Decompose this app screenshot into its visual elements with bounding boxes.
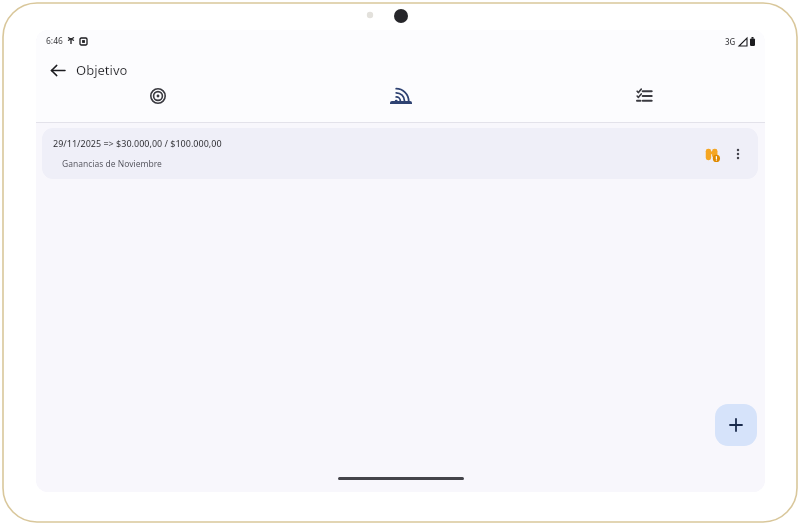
button[interactable]: Agregar — [715, 404, 757, 446]
button[interactable]: 29/11/2025 => $30.000,00 / $100.000,00 — [42, 128, 758, 179]
button[interactable]: Objetivos — [36, 88, 279, 104]
staticText: Objetivo — [76, 61, 128, 79]
button[interactable]: Tareas — [522, 88, 765, 104]
button[interactable]: Alerta — [700, 142, 724, 166]
button[interactable]: Back — [42, 55, 72, 85]
button[interactable]: Actividad — [279, 88, 522, 104]
staticText: 6:46 — [46, 35, 63, 47]
staticText: 3G — [725, 36, 736, 47]
staticText: Ganancias de Noviembre — [62, 158, 162, 170]
button[interactable]: Más opciones — [726, 142, 750, 166]
staticText: 29/11/2025 => $30.000,00 / $100.000,00 — [53, 137, 222, 149]
